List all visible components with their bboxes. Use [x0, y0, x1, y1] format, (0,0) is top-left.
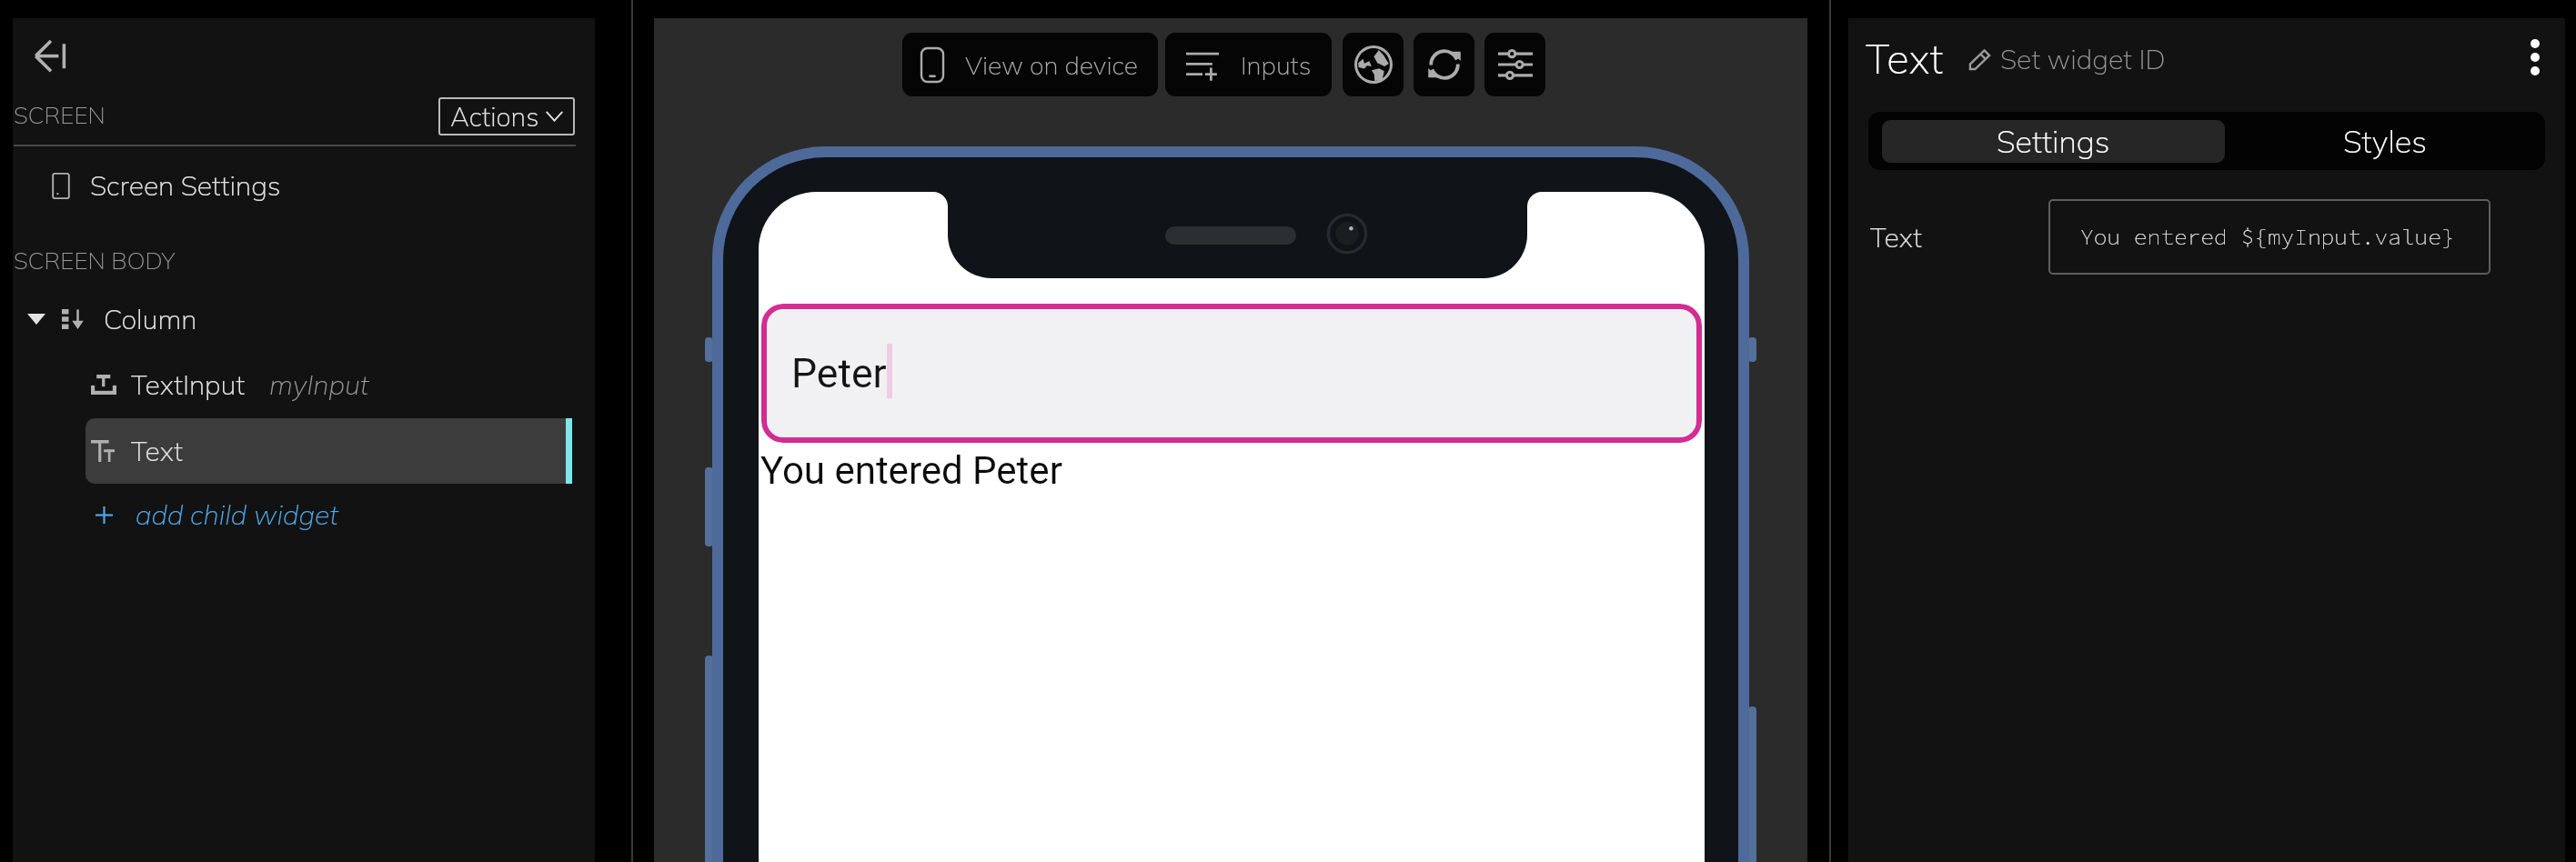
button[interactable]: Column: [13, 293, 577, 346]
button[interactable]: Styles: [2225, 112, 2545, 170]
staticText: Actions: [450, 100, 539, 133]
staticText: Text: [1866, 33, 1944, 84]
button[interactable]: add child widget: [13, 489, 577, 540]
button[interactable]: Text: [86, 418, 572, 484]
staticText: Settings: [1997, 122, 2110, 161]
button[interactable]: More options: [2512, 35, 2558, 80]
staticText: Set widget ID: [2000, 42, 2166, 76]
button[interactable]: TextInput: [13, 358, 577, 411]
staticText: TextInput: [131, 367, 246, 402]
staticText: Column: [104, 302, 197, 336]
button[interactable]: Screen Settings: [13, 158, 577, 213]
staticText: You entered Peter: [760, 448, 1062, 493]
staticText: You entered ${myInput.value}: [2080, 223, 2455, 251]
staticText: SCREEN BODY: [14, 246, 176, 276]
button[interactable]: Set widget ID: [1969, 42, 2166, 76]
button[interactable]: Preview in browser: [1343, 33, 1404, 96]
button[interactable]: You entered ${myInput.value}: [2048, 199, 2490, 275]
button[interactable]: Collapse panel: [22, 24, 78, 80]
staticText: SCREEN: [14, 100, 106, 130]
staticText: Styles: [2343, 122, 2427, 161]
button[interactable]: Inputs: [1165, 33, 1332, 96]
button[interactable]: Actions: [438, 97, 575, 135]
staticText: Text: [1870, 220, 1922, 255]
button[interactable]: Refresh: [1414, 33, 1474, 96]
staticText: Peter: [791, 350, 887, 397]
staticText: Screen Settings: [90, 168, 281, 203]
staticText: myInput: [269, 367, 369, 402]
button[interactable]: Settings: [1882, 120, 2225, 163]
staticText: add child widget: [136, 497, 339, 532]
staticText: Inputs: [1241, 49, 1312, 81]
staticText: Text: [131, 434, 183, 468]
button[interactable]: Settings: [1484, 33, 1545, 96]
staticText: View on device: [965, 49, 1139, 81]
button[interactable]: View on device: [902, 33, 1158, 96]
